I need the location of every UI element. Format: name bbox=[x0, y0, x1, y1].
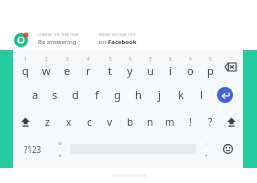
staticText: y bbox=[127, 63, 133, 78]
staticText: k bbox=[178, 87, 184, 102]
button[interactable]: 5 bbox=[99, 53, 120, 81]
staticText: h bbox=[135, 87, 142, 102]
staticText: ! bbox=[189, 115, 192, 129]
staticText: ⚙ bbox=[58, 141, 63, 146]
staticText: , bbox=[59, 146, 62, 158]
button[interactable]: n bbox=[140, 108, 160, 135]
button[interactable]: 3 bbox=[57, 53, 78, 81]
button[interactable]: 1 bbox=[15, 53, 36, 81]
staticText: . bbox=[205, 146, 208, 158]
staticText: o bbox=[187, 63, 194, 78]
button[interactable]: Comma bbox=[50, 135, 70, 163]
button[interactable]: ? bbox=[200, 108, 220, 135]
staticText: : bbox=[206, 140, 208, 146]
staticText: g bbox=[114, 87, 121, 102]
staticText: Facebook bbox=[108, 38, 137, 46]
staticText: m bbox=[165, 115, 175, 129]
staticText: r bbox=[86, 63, 91, 78]
button[interactable]: MAYBE YOU SAW THIS bbox=[96, 30, 152, 49]
staticText: e bbox=[64, 63, 71, 78]
button[interactable]: 2 bbox=[36, 53, 57, 81]
button[interactable]: 7 bbox=[140, 53, 160, 81]
staticText: 4 bbox=[87, 56, 90, 62]
button[interactable]: m bbox=[160, 108, 180, 135]
button[interactable]: Backspace bbox=[220, 53, 241, 81]
staticText: 5 bbox=[109, 56, 112, 62]
button[interactable]: CHANGE THE VERB HERE bbox=[35, 30, 91, 49]
staticText: 6 bbox=[129, 56, 132, 62]
staticText: 3 bbox=[66, 56, 69, 62]
button[interactable]: c bbox=[79, 108, 100, 135]
button[interactable]: 8 bbox=[160, 53, 180, 81]
staticText: d bbox=[72, 87, 79, 102]
button[interactable]: Enter bbox=[212, 81, 238, 108]
button[interactable]: v bbox=[100, 108, 120, 135]
button[interactable]: Period bbox=[196, 135, 216, 163]
button[interactable]: d bbox=[65, 81, 86, 108]
staticText: v bbox=[107, 115, 113, 129]
button[interactable]: s bbox=[45, 81, 65, 108]
button[interactable]: Grammar assistant bbox=[13, 31, 30, 48]
button[interactable]: b bbox=[120, 108, 140, 135]
button[interactable]: j bbox=[149, 81, 170, 108]
button[interactable]: k bbox=[170, 81, 191, 108]
staticText: 1 bbox=[24, 56, 27, 62]
staticText: 2 bbox=[45, 56, 48, 62]
button[interactable]: a bbox=[25, 81, 45, 108]
staticText: t bbox=[108, 63, 112, 78]
staticText: ? bbox=[208, 115, 213, 129]
staticText: b bbox=[127, 115, 134, 129]
button[interactable]: g bbox=[107, 81, 128, 108]
button[interactable]: ?123 bbox=[16, 135, 50, 163]
staticText: 7 bbox=[149, 56, 152, 62]
staticText: Be answering bbox=[38, 38, 77, 46]
staticText: 9 bbox=[189, 56, 192, 62]
staticText: u bbox=[147, 63, 154, 78]
staticText: j bbox=[158, 87, 161, 102]
staticText: z bbox=[45, 115, 50, 129]
staticText: 8 bbox=[169, 56, 172, 62]
staticText: c bbox=[87, 115, 92, 129]
staticText: f bbox=[95, 87, 99, 102]
staticText: 0 bbox=[209, 56, 212, 62]
button[interactable]: f bbox=[86, 81, 107, 108]
staticText: on bbox=[99, 38, 108, 46]
staticText: i bbox=[169, 63, 172, 78]
button[interactable]: Shift bbox=[13, 108, 37, 135]
staticText: q bbox=[22, 63, 29, 78]
staticText: x bbox=[66, 115, 72, 129]
staticText: n bbox=[147, 115, 154, 129]
button[interactable]: Emoji bbox=[216, 135, 240, 163]
staticText: s bbox=[52, 87, 58, 102]
staticText: MAYBE YOU SAW THIS bbox=[99, 33, 136, 37]
staticText: p bbox=[207, 63, 214, 78]
button[interactable]: 6 bbox=[120, 53, 140, 81]
button[interactable]: 0 bbox=[200, 53, 220, 81]
staticText: a bbox=[32, 87, 39, 102]
button[interactable]: l bbox=[191, 81, 212, 108]
button[interactable]: z bbox=[37, 108, 58, 135]
button[interactable]: ! bbox=[180, 108, 200, 135]
staticText: ?123 bbox=[24, 144, 42, 155]
staticText: l bbox=[200, 87, 203, 102]
button[interactable]: x bbox=[58, 108, 79, 135]
button[interactable]: h bbox=[128, 81, 149, 108]
button[interactable]: 4 bbox=[78, 53, 99, 81]
button[interactable]: Caps bbox=[220, 108, 243, 135]
staticText: w bbox=[42, 63, 51, 78]
button[interactable]: 9 bbox=[180, 53, 200, 81]
staticText: CHANGE THE VERB HERE bbox=[38, 33, 79, 37]
